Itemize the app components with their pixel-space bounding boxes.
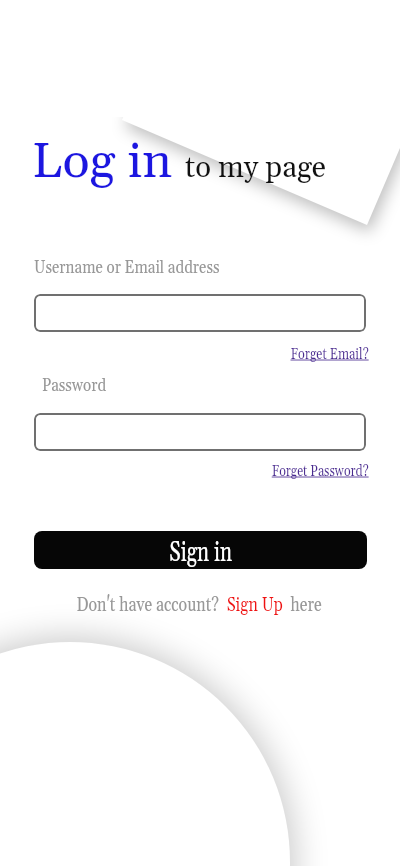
staticText: Username or Email address [34,256,220,279]
staticText: Sign in [169,536,233,569]
button[interactable]: Don't have account? Sign Up here [76,593,322,617]
button[interactable] [34,413,366,451]
staticText: to my page [185,149,327,187]
button[interactable]: Forget Email? [290,344,369,364]
button[interactable]: Sign in [34,531,367,569]
button[interactable] [34,294,366,332]
button[interactable]: Forget Password? [272,461,369,481]
staticText: Log in [32,132,173,193]
staticText: Password [42,374,107,397]
